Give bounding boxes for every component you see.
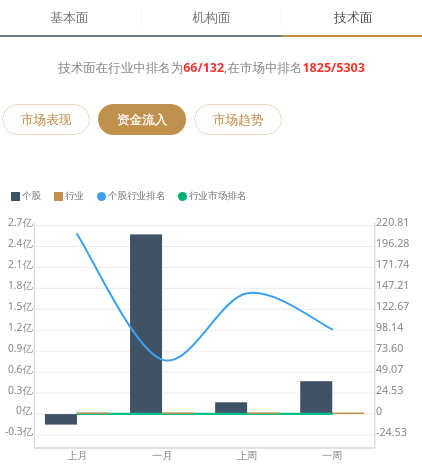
staticText: 2.4亿 [8, 236, 33, 250]
staticText: 基本面 [50, 9, 89, 25]
staticText: 0 [376, 404, 383, 419]
staticText: 资金流入 [117, 112, 168, 128]
staticText: 市场表现 [21, 112, 72, 128]
button[interactable]: 机构面 [139, 0, 284, 33]
staticText: 个股行业排名 [108, 190, 166, 202]
staticText: 24.53 [376, 383, 404, 398]
staticText: 0.3亿 [8, 383, 33, 397]
staticText: 98.14 [376, 320, 404, 335]
staticText: 一周 [322, 449, 343, 462]
staticText: 上月 [67, 449, 88, 462]
staticText: 147.21 [376, 278, 410, 293]
button[interactable]: 资金流入 [98, 104, 186, 135]
staticText: 0亿 [16, 403, 33, 417]
staticText: 机构面 [192, 9, 231, 25]
staticText: 49.07 [376, 362, 404, 377]
staticText: 2.1亿 [8, 257, 33, 271]
staticText: 171.74 [376, 257, 410, 272]
staticText: 上周 [237, 449, 258, 462]
staticText: 220.81 [376, 215, 410, 230]
staticText: 1.5亿 [8, 299, 33, 313]
button[interactable]: 市场表现 [2, 104, 90, 135]
staticText: 0.6亿 [8, 362, 33, 376]
staticText: 2.7亿 [8, 215, 33, 229]
staticText: -24.53 [376, 425, 407, 440]
button[interactable]: 基本面 [0, 0, 139, 33]
staticText: 技术面在行业中排名为66/132,在市场中排名1825/5303 [58, 59, 365, 76]
staticText: 1.2亿 [8, 320, 33, 334]
staticText: -0.3亿 [5, 424, 33, 438]
staticText: 1.8亿 [8, 278, 33, 292]
staticText: 73.60 [376, 341, 404, 356]
staticText: 个股 [22, 190, 42, 202]
staticText: 122.67 [376, 299, 410, 314]
staticText: 技术面 [334, 9, 373, 25]
staticText: 196.28 [376, 236, 410, 251]
staticText: 市场趋势 [213, 112, 264, 128]
button[interactable]: 技术面 [284, 0, 422, 33]
staticText: 0.9亿 [8, 341, 33, 355]
staticText: 行业 [65, 190, 85, 202]
button[interactable]: 市场趋势 [194, 104, 282, 135]
staticText: 行业市场排名 [189, 190, 247, 202]
staticText: 一月 [152, 449, 173, 462]
